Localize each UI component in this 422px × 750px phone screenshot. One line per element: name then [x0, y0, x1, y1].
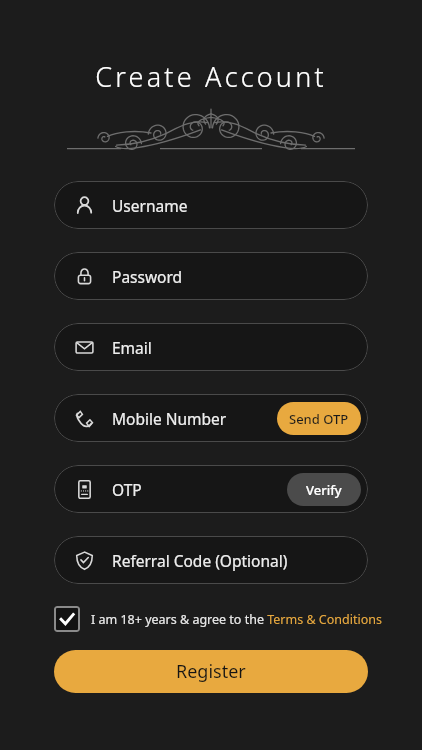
staticText: Create Account [0, 58, 422, 95]
staticText: Referral Code (Optional) [112, 550, 288, 571]
button[interactable]: Password [54, 252, 368, 300]
button[interactable]: Mobile Number [54, 394, 368, 442]
button[interactable]: Email [54, 323, 368, 371]
staticText: I am 18+ years & agree to the Terms & Co… [91, 611, 382, 628]
staticText: OTP [112, 479, 142, 500]
staticText: Mobile Number [112, 408, 227, 429]
button[interactable]: Send OTP [277, 402, 361, 435]
button[interactable]: Verify [287, 473, 361, 506]
button[interactable]: Username [54, 181, 368, 229]
button[interactable]: I am 18+ years & agree to the Terms & Co… [54, 606, 402, 632]
staticText: Email [112, 337, 152, 358]
staticText: Verify [306, 481, 342, 499]
staticText: Send OTP [289, 410, 349, 428]
staticText: Register [176, 659, 246, 684]
button[interactable]: OTP [54, 465, 368, 513]
staticText: Username [112, 195, 188, 216]
button[interactable]: Register [54, 650, 368, 693]
staticText: Password [112, 266, 183, 287]
button[interactable]: Referral Code (Optional) [54, 536, 368, 584]
